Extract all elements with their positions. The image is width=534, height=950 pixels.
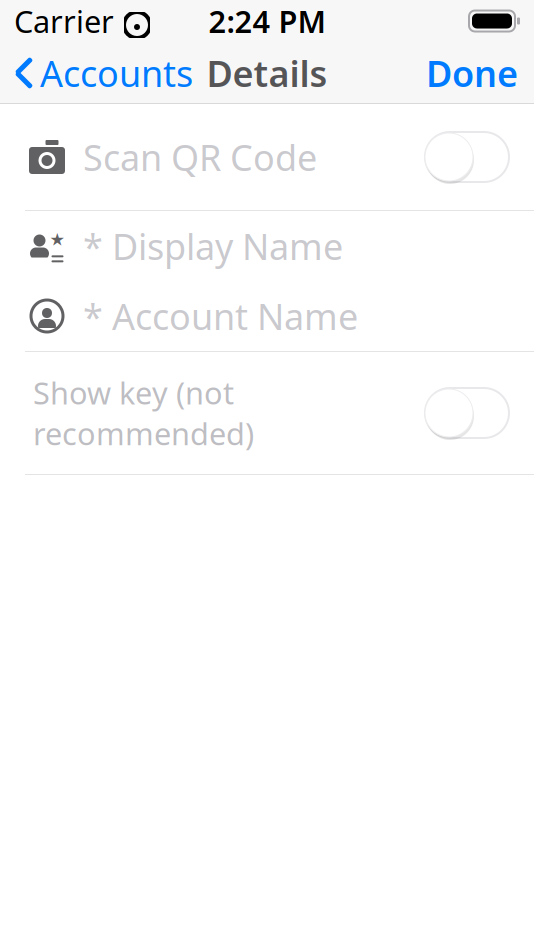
staticText: * Account Name: [83, 292, 358, 340]
button[interactable]: * Account Name: [0, 281, 534, 351]
staticText: ★: [49, 230, 65, 249]
staticText: Details: [206, 49, 327, 97]
button[interactable]: Show key (not recommended): [0, 352, 534, 474]
button[interactable]: Done: [410, 42, 534, 104]
staticText: Carrier: [14, 1, 114, 41]
staticText: Show key (not recommended): [33, 372, 254, 454]
button[interactable]: Scan QR Code: [0, 104, 534, 210]
button[interactable]: ★: [0, 211, 534, 281]
staticText: * Display Name: [83, 222, 343, 270]
staticText: Done: [426, 49, 518, 97]
button[interactable]: Accounts: [0, 42, 207, 104]
staticText: 2:24 PM: [208, 1, 325, 41]
staticText: Accounts: [40, 49, 193, 97]
staticText: Scan QR Code: [83, 133, 317, 181]
